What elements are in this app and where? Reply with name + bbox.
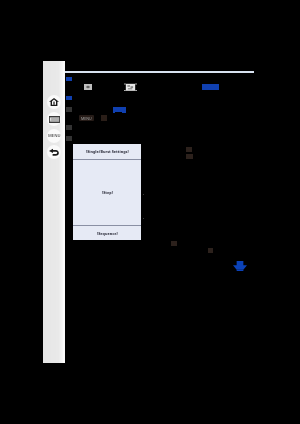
staticText: [Step] (102, 190, 113, 195)
button[interactable]: Menu (47, 129, 61, 143)
staticText: [Single/Burst Settings] (86, 149, 129, 154)
button[interactable]: Home (47, 95, 61, 109)
staticText: MENU (81, 116, 92, 121)
staticText: [Sequence] (97, 231, 118, 236)
button[interactable]: Back (47, 145, 61, 159)
button[interactable]: Screen (47, 112, 61, 126)
staticText: MENU (48, 133, 61, 139)
